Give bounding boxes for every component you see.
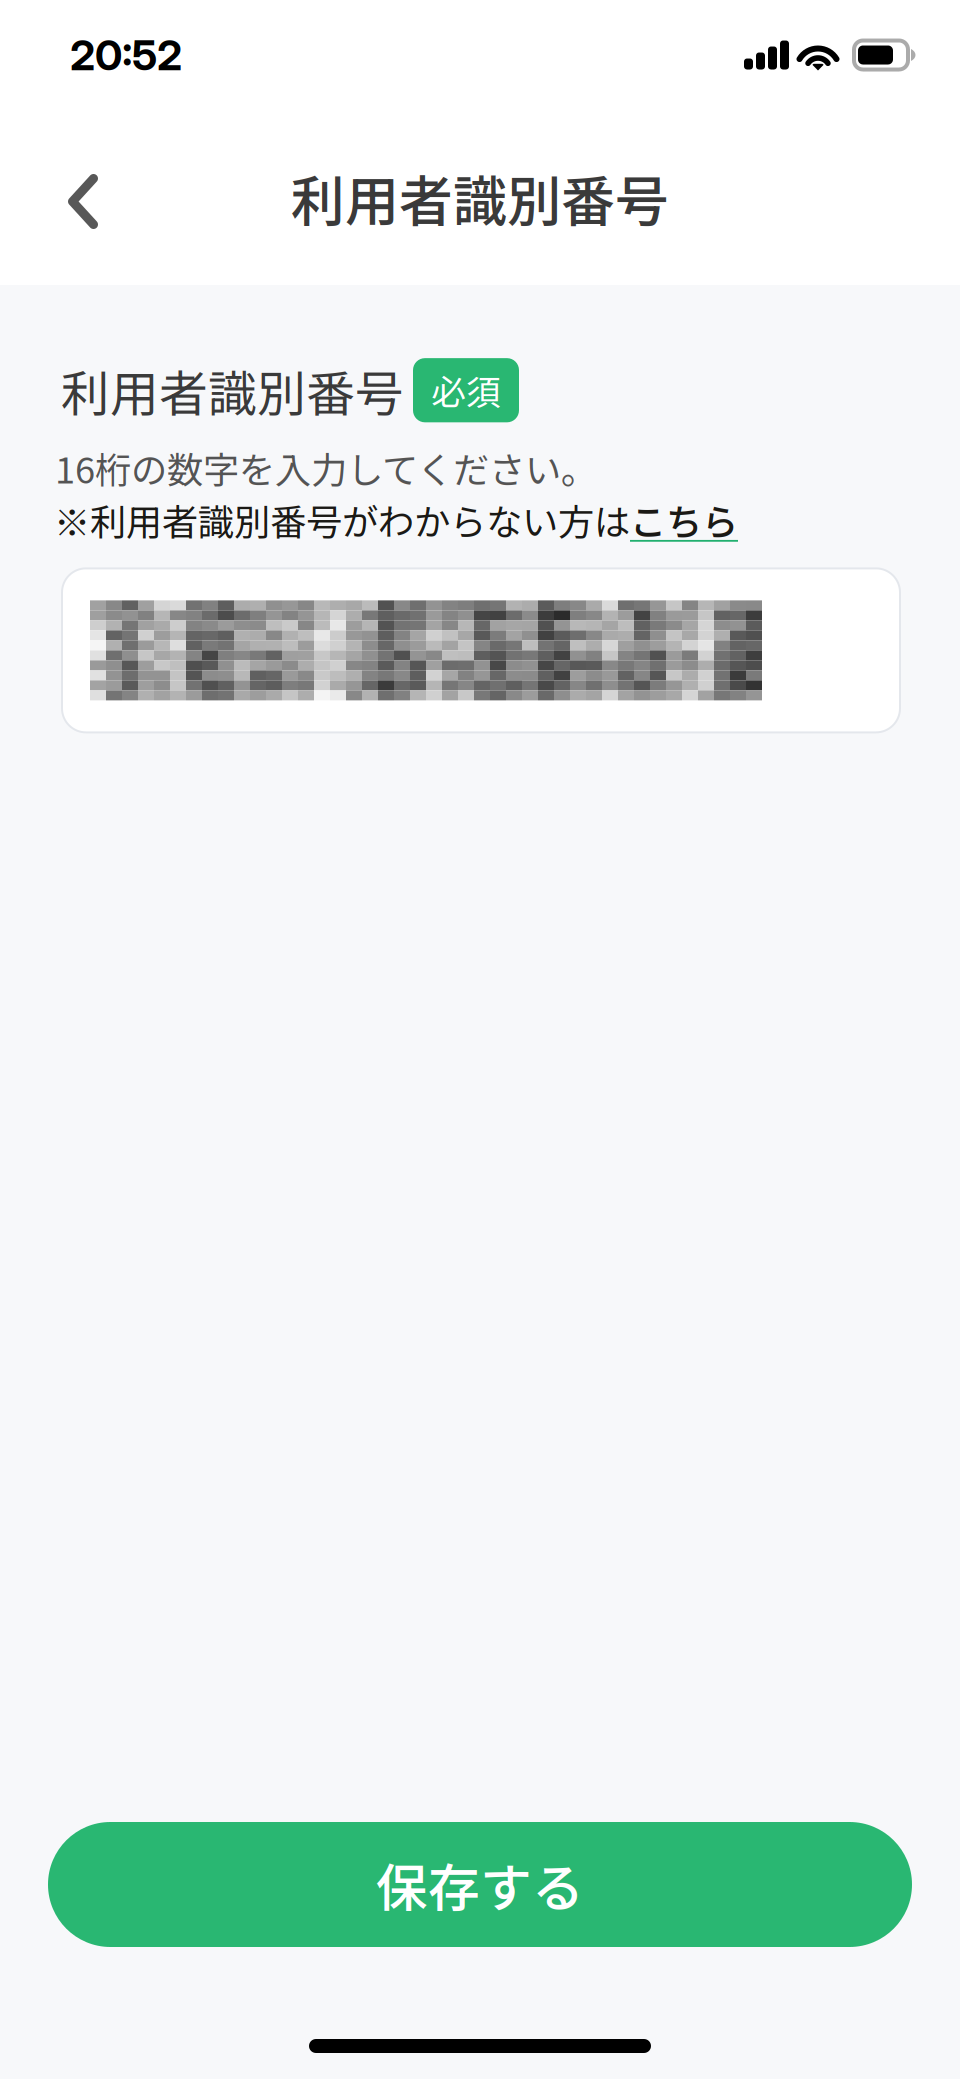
staticText: 利用者識別番号 — [291, 158, 669, 237]
staticText: 16桁の数字を入力してください。 — [55, 441, 597, 494]
button[interactable]: 利用者識別番号 入力欄 — [62, 568, 900, 732]
button[interactable]: ※利用者識別番号がわからない方はこちら — [54, 494, 738, 545]
staticText: 利用者識別番号 — [61, 355, 404, 425]
staticText: 保存する — [376, 1847, 584, 1922]
button[interactable]: 戻る — [0, 145, 131, 249]
staticText: 必須 — [431, 365, 501, 415]
staticText: ※利用者識別番号がわからない方はこちら — [54, 494, 738, 545]
staticText: 20:52 — [70, 30, 182, 80]
button[interactable]: 保存する — [48, 1822, 912, 1947]
